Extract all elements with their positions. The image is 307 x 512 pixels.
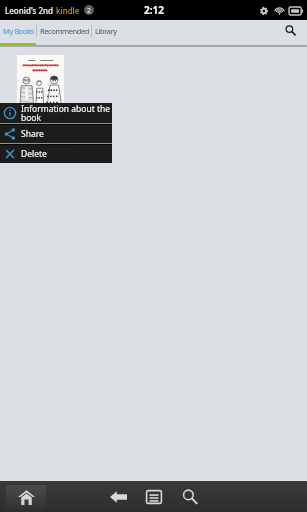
staticText: Share — [21, 128, 44, 140]
button[interactable]: Share — [0, 125, 112, 143]
staticText: My Books — [3, 26, 34, 36]
button[interactable]: Back — [107, 484, 130, 510]
staticText: Сергей Довлатов — [17, 141, 76, 151]
staticText: 2:12 — [144, 3, 164, 17]
staticText: Delete — [21, 148, 47, 160]
button[interactable]: Information about the book — [0, 103, 112, 123]
staticText: kindle — [56, 5, 80, 16]
button[interactable]: Search — [278, 19, 302, 42]
staticText: Information about the book — [21, 103, 111, 123]
button[interactable]: Delete — [0, 145, 112, 163]
other: Book cover — [17, 55, 64, 119]
staticText: Library — [95, 26, 117, 36]
button[interactable]: My Books — [0, 19, 36, 42]
staticText: 2 — [87, 6, 91, 15]
button[interactable]: Search — [178, 484, 201, 510]
staticText: Leonid's 2nd — [5, 5, 56, 16]
staticText: Recommended — [40, 26, 89, 36]
button[interactable]: Recent apps — [142, 484, 165, 510]
staticText: Записки моего юмора — [17, 122, 85, 141]
button[interactable]: Recommended — [37, 19, 91, 42]
button[interactable]: Library — [92, 19, 120, 42]
button[interactable]: Book cover — [17, 55, 85, 151]
button[interactable]: Home — [6, 485, 46, 509]
